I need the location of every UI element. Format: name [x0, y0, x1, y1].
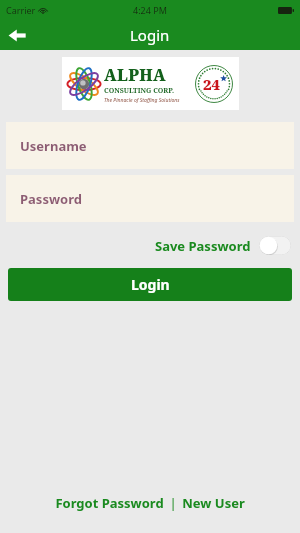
button[interactable]: New User: [180, 490, 247, 516]
staticText: Save Password: [155, 237, 251, 255]
staticText: The Pinnacle of Staffing Solutions: [104, 97, 180, 104]
button[interactable]: Forgot Password: [53, 490, 166, 516]
button[interactable]: Back: [0, 20, 34, 50]
staticText: Login: [131, 275, 170, 294]
button[interactable]: Username: [6, 122, 294, 169]
staticText: Login: [130, 25, 170, 45]
staticText: New User: [182, 494, 245, 512]
staticText: 4:24 PM: [133, 4, 167, 16]
staticText: CONSULTING CORP.: [104, 86, 175, 96]
button[interactable]: Save Password: [155, 236, 291, 255]
button[interactable]: Login: [8, 268, 292, 301]
staticText: Carrier: [6, 4, 36, 16]
staticText: Username: [20, 137, 87, 155]
button[interactable]: Password: [6, 175, 294, 222]
staticText: Forgot Password: [55, 494, 164, 512]
staticText: |: [166, 494, 180, 512]
staticText: ALPHA: [104, 64, 167, 86]
staticText: Password: [20, 190, 82, 208]
staticText: 24: [203, 74, 221, 94]
